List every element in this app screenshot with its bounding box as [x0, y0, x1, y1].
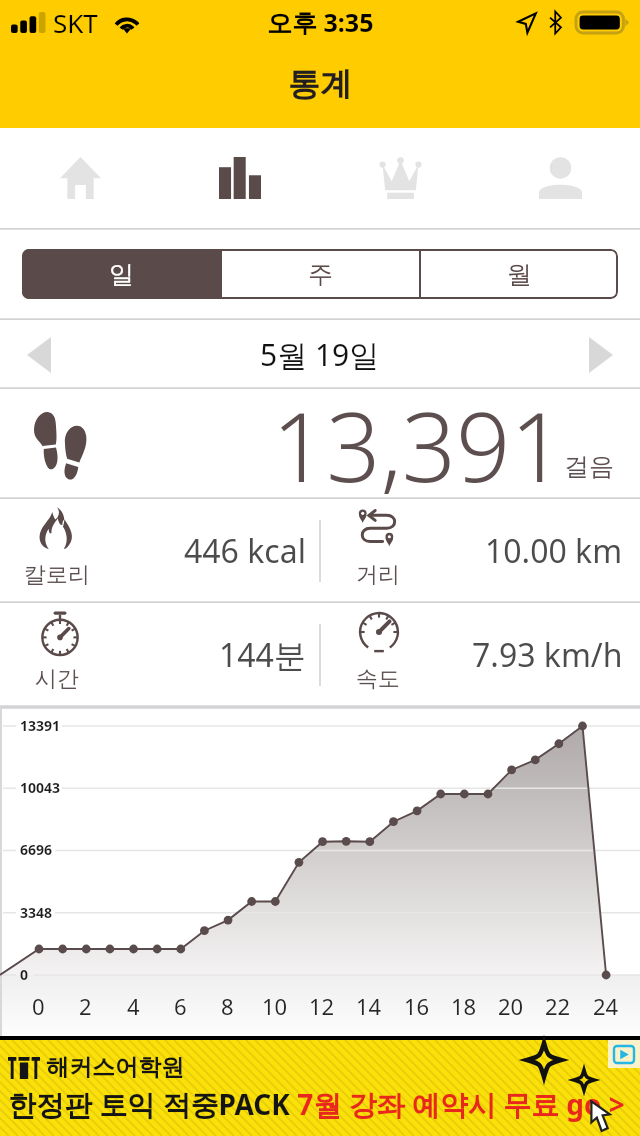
staticText: 13391: [20, 716, 61, 735]
staticText: 12: [309, 991, 335, 1021]
button[interactable]: Previous day: [0, 320, 78, 389]
staticText: 20: [498, 991, 524, 1021]
staticText: 16: [404, 991, 430, 1021]
staticText: 24: [593, 991, 619, 1021]
staticText: 거리: [356, 561, 400, 589]
button[interactable]: Ad choices: [0, 1036, 640, 1136]
staticText: 칼로리: [24, 561, 90, 589]
staticText: 446 kcal: [184, 529, 306, 573]
other: Ad choices: [608, 1040, 640, 1068]
staticText: 통계: [288, 64, 352, 104]
staticText: 13,391: [272, 380, 565, 509]
staticText: 5월 19일: [260, 334, 380, 375]
staticText: 일: [109, 259, 134, 290]
staticText: 해커스어학원: [46, 1053, 184, 1082]
button[interactable]: Ranking: [320, 128, 480, 228]
staticText: 7.93 km/h: [472, 633, 623, 677]
staticText: 6696: [20, 840, 53, 859]
button[interactable]: Statistics: [160, 128, 320, 228]
staticText: 22: [545, 991, 571, 1021]
staticText: 10043: [20, 778, 61, 797]
staticText: 6: [174, 991, 187, 1021]
button[interactable]: Profile: [480, 128, 640, 228]
staticText: 10: [262, 991, 288, 1021]
staticText: 10.00 km: [485, 529, 623, 573]
button[interactable]: 일: [22, 249, 220, 299]
staticText: 4: [127, 991, 140, 1021]
staticText: 3348: [20, 903, 53, 922]
staticText: 2: [79, 991, 92, 1021]
button[interactable]: 월: [421, 249, 618, 299]
staticText: 0: [32, 991, 45, 1021]
button[interactable]: Home: [0, 128, 160, 228]
button[interactable]: 주: [222, 249, 419, 299]
staticText: 0: [20, 965, 29, 984]
staticText: 8: [221, 991, 234, 1021]
staticText: 월: [507, 259, 532, 290]
staticText: 걸음: [564, 451, 614, 482]
staticText: 14: [356, 991, 382, 1021]
staticText: 한정판 토익 적중PACK 7월 강좌 예약시 무료 go >: [8, 1085, 625, 1123]
staticText: 144분: [219, 633, 306, 677]
staticText: 오후 3:35: [267, 5, 374, 39]
staticText: 주: [308, 259, 333, 290]
staticText: 18: [451, 991, 477, 1021]
staticText: 시간: [35, 665, 79, 693]
staticText: SKT: [53, 5, 98, 40]
staticText: 속도: [356, 665, 400, 693]
button[interactable]: Next day: [562, 320, 640, 389]
